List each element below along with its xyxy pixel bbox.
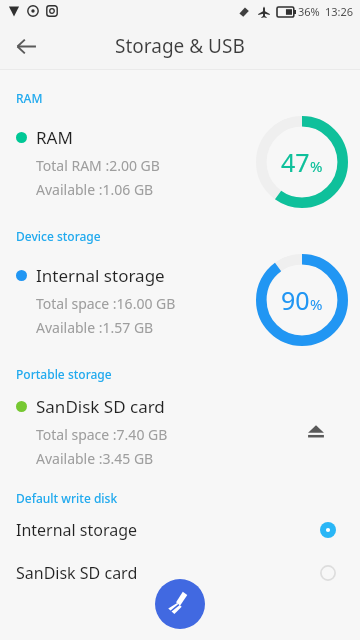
staticText: Total space :7.40 GB [36, 425, 168, 444]
staticText: Available :3.45 GB [36, 449, 154, 468]
button[interactable]: SanDisk SD card [0, 384, 360, 478]
staticText: 13:26 [325, 4, 354, 19]
staticText: Device storage [16, 228, 101, 244]
staticText: Storage & USB [115, 33, 245, 59]
staticText: Total RAM :2.00 GB [36, 156, 160, 175]
staticText: SanDisk SD card [36, 395, 165, 418]
button[interactable]: SanDisk SD card [0, 551, 360, 594]
staticText: Available :1.57 GB [36, 318, 154, 337]
staticText: 90 [281, 283, 310, 317]
button[interactable]: Back [6, 26, 46, 66]
staticText: Available :1.06 GB [36, 180, 154, 199]
button[interactable]: Internal storage [0, 246, 360, 354]
staticText: Default write disk [16, 490, 118, 506]
staticText: 47 [281, 145, 310, 179]
staticText: Total space :16.00 GB [36, 294, 176, 313]
button[interactable]: Internal storage [0, 508, 360, 551]
staticText: % [310, 294, 323, 314]
button[interactable]: Clean storage [155, 579, 205, 629]
staticText: RAM [36, 126, 73, 149]
staticText: RAM [16, 90, 43, 106]
staticText: Portable storage [16, 366, 112, 382]
staticText: Internal storage [16, 519, 138, 541]
staticText: SanDisk SD card [16, 562, 138, 584]
button[interactable]: RAM [0, 108, 360, 216]
staticText: Internal storage [36, 264, 165, 287]
button[interactable]: Eject SD card [296, 411, 336, 451]
staticText: 36% [298, 4, 320, 19]
staticText: % [310, 156, 323, 176]
